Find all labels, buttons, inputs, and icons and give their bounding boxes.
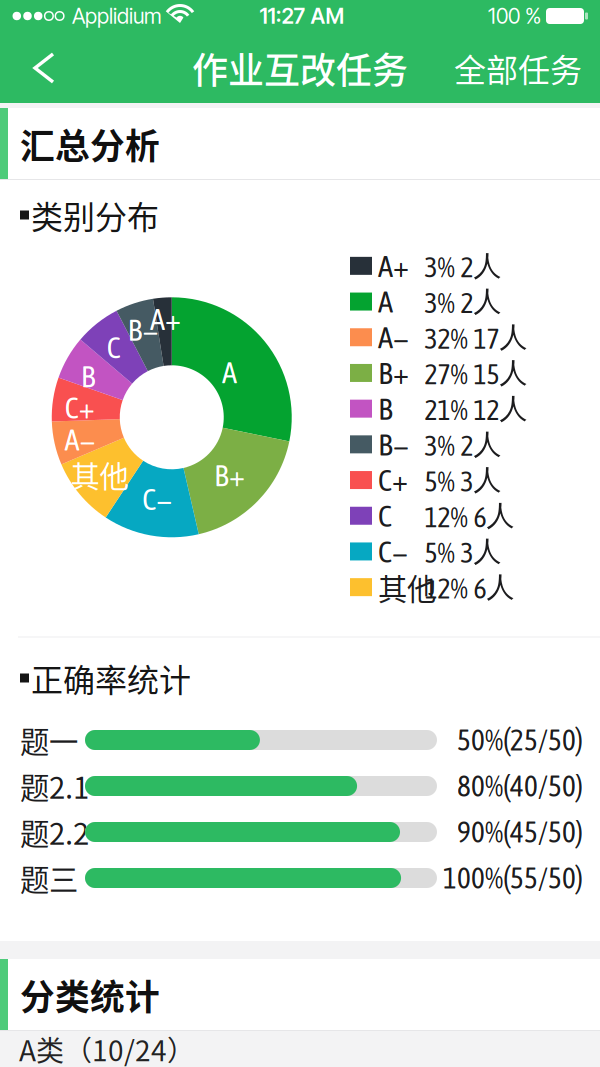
staticText: 5% 3人: [424, 462, 501, 498]
staticText: 12% 6人: [424, 569, 514, 605]
staticText: B: [81, 359, 96, 394]
staticText: 100 %: [488, 3, 541, 29]
staticText: 正确率统计: [31, 655, 191, 701]
staticText: 3% 2人: [424, 284, 501, 319]
staticText: A−: [64, 422, 95, 457]
staticText: 题2.2: [20, 811, 89, 853]
staticText: 21% 12人: [424, 391, 527, 426]
staticText: 汇总分析: [20, 119, 160, 169]
staticText: C+: [378, 462, 408, 498]
staticText: 50%(25/50): [457, 723, 583, 757]
staticText: 其他: [378, 566, 436, 608]
button[interactable]: 全部任务: [442, 35, 582, 101]
staticText: C+: [65, 390, 95, 425]
staticText: 3% 2人: [424, 248, 501, 283]
staticText: A+: [378, 248, 409, 283]
staticText: A: [378, 284, 393, 319]
staticText: B: [378, 391, 393, 426]
staticText: 其他: [71, 453, 129, 496]
staticText: 12% 6人: [424, 498, 514, 533]
button[interactable]: Back: [4, 35, 84, 101]
staticText: A类（10/24）: [19, 1029, 195, 1067]
staticText: C−: [142, 481, 172, 516]
staticText: A−: [378, 320, 409, 355]
staticText: 全部任务: [454, 45, 582, 91]
staticText: 题一: [20, 719, 78, 761]
staticText: 分类统计: [20, 970, 160, 1020]
staticText: 27% 15人: [424, 355, 527, 391]
staticText: C: [378, 498, 392, 533]
staticText: 90%(45/50): [457, 815, 583, 849]
staticText: 11:27 AM: [259, 3, 344, 29]
staticText: 类别分布: [31, 192, 159, 238]
staticText: C−: [378, 534, 408, 569]
staticText: 5% 3人: [424, 534, 501, 569]
staticText: B−: [128, 312, 159, 347]
staticText: Applidium: [72, 3, 162, 29]
staticText: 作业互改任务: [192, 42, 408, 94]
staticText: 题三: [20, 857, 78, 899]
staticText: B+: [214, 458, 245, 493]
staticText: B−: [378, 427, 409, 462]
staticText: 32% 17人: [424, 320, 527, 355]
staticText: C: [107, 330, 121, 365]
staticText: A+: [150, 301, 181, 336]
staticText: 3% 2人: [424, 427, 501, 462]
staticText: B+: [378, 355, 409, 390]
staticText: A: [222, 355, 237, 390]
staticText: 100%(55/50): [443, 861, 583, 895]
staticText: 题2.1: [20, 765, 89, 807]
staticText: 80%(40/50): [457, 769, 583, 803]
